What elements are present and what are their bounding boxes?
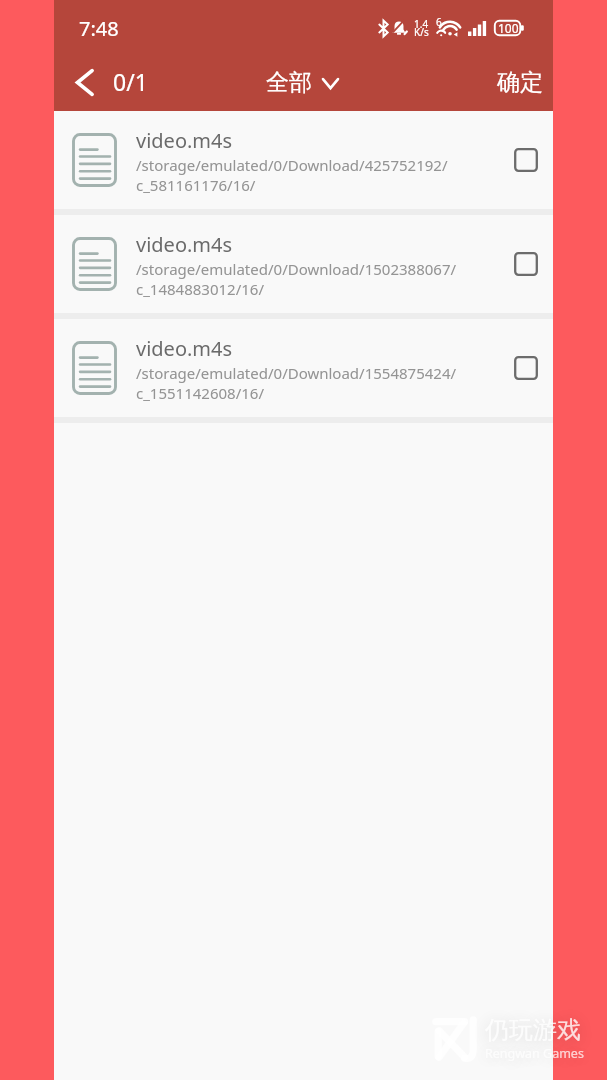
button[interactable]: 全部 xyxy=(260,63,344,104)
button[interactable]: video.m4s xyxy=(54,111,553,209)
staticText: 全部 xyxy=(266,68,312,97)
button[interactable]: Select file xyxy=(504,138,548,182)
staticText: /storage/emulated/0/Download/1502388067/ xyxy=(136,259,457,279)
button[interactable]: video.m4s xyxy=(54,215,553,313)
staticText: 7:48 xyxy=(79,15,119,42)
staticText: 1.4 xyxy=(414,17,429,31)
staticText: video.m4s xyxy=(136,335,233,362)
staticText: 6 xyxy=(436,15,442,29)
button[interactable]: 确定 xyxy=(483,61,553,106)
staticText: Rengwan Games xyxy=(485,1045,584,1062)
staticText: video.m4s xyxy=(136,231,233,258)
staticText: 0/1 xyxy=(113,66,148,97)
staticText: 确定 xyxy=(497,68,543,97)
staticText: /storage/emulated/0/Download/425752192/ xyxy=(136,155,448,175)
staticText: c_1551142608/16/ xyxy=(136,383,264,403)
other: Back xyxy=(75,68,94,97)
staticText: c_581161176/16/ xyxy=(136,175,256,195)
button[interactable]: Select file xyxy=(504,242,548,286)
staticText: /storage/emulated/0/Download/1554875424/ xyxy=(136,363,457,383)
staticText: K/s xyxy=(414,25,429,39)
staticText: 100 xyxy=(498,20,519,36)
button[interactable]: Select file xyxy=(504,346,548,390)
staticText: video.m4s xyxy=(136,127,233,154)
staticText: c_1484883012/16/ xyxy=(136,279,264,299)
staticText: 仍玩游戏 xyxy=(485,1015,581,1045)
button[interactable]: video.m4s xyxy=(54,319,553,417)
button[interactable]: Back xyxy=(54,60,160,107)
